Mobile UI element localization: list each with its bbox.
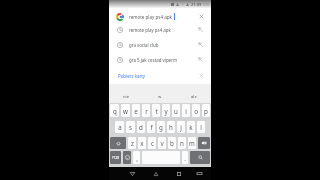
button[interactable]: s xyxy=(126,121,135,133)
staticText: s xyxy=(129,123,132,131)
staticText: x xyxy=(140,139,144,147)
button[interactable]: q xyxy=(110,104,119,117)
staticText: l xyxy=(200,123,202,131)
button[interactable]: y xyxy=(162,104,170,117)
button[interactable]: n xyxy=(178,137,186,149)
button[interactable]: Dismiss xyxy=(191,67,211,84)
button[interactable]: Recent apps xyxy=(167,167,190,180)
button[interactable]: j xyxy=(177,121,185,133)
button[interactable]: u xyxy=(172,104,180,117)
button[interactable]: Shift xyxy=(110,137,126,149)
button[interactable]: e xyxy=(132,104,140,117)
staticText: q xyxy=(113,107,117,115)
button[interactable]: w xyxy=(121,104,130,117)
staticText: u xyxy=(174,107,178,115)
staticText: b xyxy=(170,139,174,147)
staticText: g xyxy=(159,123,163,131)
button[interactable]: v xyxy=(158,137,166,149)
staticText: i xyxy=(185,107,187,115)
staticText: r xyxy=(145,107,148,115)
button[interactable]: c xyxy=(148,137,156,149)
button[interactable]: a xyxy=(115,121,124,133)
button[interactable]: ale xyxy=(177,90,211,103)
staticText: z xyxy=(131,139,134,147)
button[interactable]: . xyxy=(182,151,188,164)
button[interactable]: w xyxy=(143,90,177,103)
button[interactable]: g xyxy=(157,121,165,133)
button[interactable]: Insert suggestion xyxy=(190,37,211,52)
button[interactable]: remote play ps4 apk xyxy=(109,22,211,37)
staticText: gra 5 jak costad viperm xyxy=(129,57,177,63)
button[interactable]: Insert suggestion xyxy=(190,22,211,37)
staticText: k xyxy=(189,123,193,131)
staticText: j xyxy=(180,123,182,131)
button[interactable]: d xyxy=(137,121,145,133)
staticText: m xyxy=(189,139,195,147)
button[interactable]: h xyxy=(167,121,175,133)
button[interactable]: m xyxy=(188,137,196,149)
staticText: e xyxy=(134,107,138,115)
staticText: a xyxy=(118,123,122,131)
staticText: c xyxy=(151,139,154,147)
button[interactable]: Home xyxy=(144,167,167,180)
staticText: Pobierz karty xyxy=(118,73,146,79)
button[interactable]: Insert suggestion xyxy=(190,52,211,67)
button[interactable]: z xyxy=(128,137,136,149)
button[interactable]: remote play ps4 apk xyxy=(109,8,211,22)
staticText: ale xyxy=(191,94,197,100)
button[interactable]: Emoji xyxy=(123,151,131,164)
button[interactable]: Clear search xyxy=(191,11,211,22)
button[interactable]: Backspace xyxy=(198,137,210,149)
staticText: p xyxy=(204,107,208,115)
staticText: . xyxy=(184,154,186,162)
button[interactable]: Hide keyboard xyxy=(190,167,209,180)
staticText: w xyxy=(123,107,128,115)
staticText: gra social club xyxy=(129,42,159,48)
button[interactable]: b xyxy=(168,137,176,149)
staticText: 21:09 xyxy=(191,2,202,7)
button[interactable]: f xyxy=(147,121,155,133)
button[interactable]: Search xyxy=(190,151,210,164)
button[interactable]: Back xyxy=(121,167,144,180)
staticText: remote play ps4 apk xyxy=(129,27,171,33)
button[interactable]: gra 5 jak costad viperm xyxy=(109,52,211,67)
button[interactable]: l xyxy=(197,121,205,133)
staticText: n xyxy=(180,139,184,147)
button[interactable]: i xyxy=(182,104,190,117)
button[interactable]: p xyxy=(202,104,210,117)
button[interactable]: k xyxy=(187,121,195,133)
button[interactable]: x xyxy=(138,137,146,149)
button[interactable]: t xyxy=(152,104,160,117)
button[interactable]: gra social club xyxy=(109,37,211,52)
staticText: d xyxy=(139,123,143,131)
staticText: f xyxy=(150,123,153,131)
staticText: y xyxy=(164,107,168,115)
staticText: h xyxy=(169,123,173,131)
button[interactable]: Symbols xyxy=(110,151,121,164)
staticText: v xyxy=(160,139,164,147)
button[interactable]: r xyxy=(142,104,150,117)
button[interactable]: Pobierz karty xyxy=(109,67,211,84)
button[interactable]: o xyxy=(192,104,200,117)
staticText: , xyxy=(136,154,138,162)
button[interactable]: , xyxy=(133,151,140,164)
staticText: nie xyxy=(123,94,130,100)
staticText: w xyxy=(158,94,162,100)
staticText: ?123 xyxy=(112,155,120,160)
staticText: remote play ps4 apk xyxy=(129,14,172,20)
staticText: o xyxy=(194,107,198,115)
staticText: t xyxy=(155,107,158,115)
button[interactable]: nie xyxy=(109,90,143,103)
